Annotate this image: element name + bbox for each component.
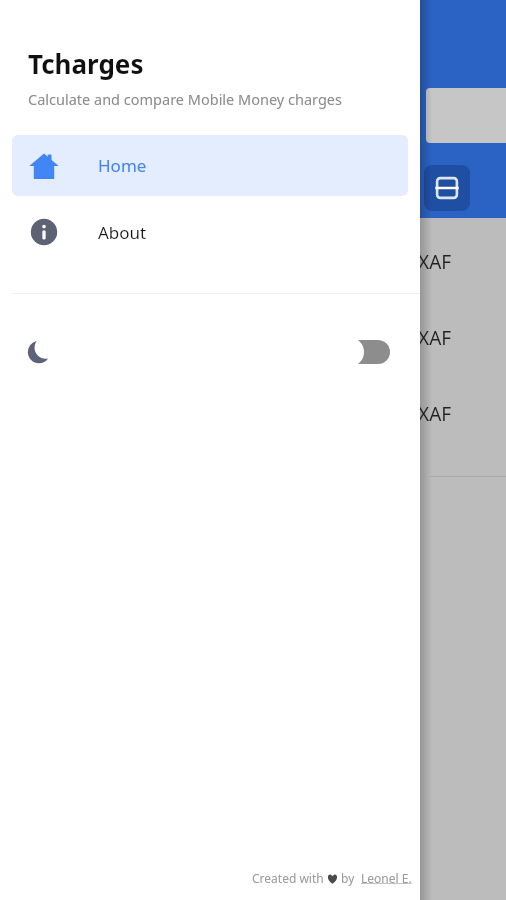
staticText: Created with	[252, 870, 327, 886]
button[interactable]: Leonel E.	[361, 870, 412, 886]
other: Home	[29, 151, 59, 181]
staticText: About	[98, 221, 147, 244]
staticText: XAF	[418, 249, 452, 275]
button[interactable]: XAF	[0, 376, 506, 452]
staticText: Calculate and compare Mobile Money charg…	[28, 89, 342, 109]
staticText: by	[338, 870, 361, 886]
button[interactable]: About	[12, 196, 408, 268]
other: About	[29, 217, 59, 247]
staticText: Tcharges	[28, 46, 144, 81]
button[interactable]: XAF	[0, 224, 506, 300]
button[interactable]: Dark mode	[0, 294, 420, 409]
other: Dark mode	[25, 338, 53, 366]
staticText: Leonel E.	[361, 870, 412, 886]
staticText: XAF	[418, 401, 452, 427]
button[interactable]	[426, 88, 506, 143]
staticText: XAF	[418, 325, 452, 351]
button[interactable]: XAF	[0, 300, 506, 376]
staticText: Home	[98, 154, 147, 177]
button[interactable]: Swap	[424, 165, 470, 211]
button[interactable]: Home	[12, 135, 408, 196]
